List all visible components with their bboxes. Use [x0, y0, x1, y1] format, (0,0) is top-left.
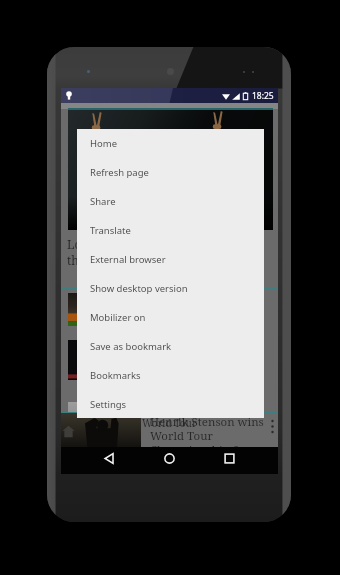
button[interactable]: Mobilizer on	[77, 303, 264, 332]
staticText: External browser	[90, 253, 166, 266]
button[interactable]: Back	[87, 445, 131, 472]
staticText: Save as bookmark	[90, 340, 172, 353]
button[interactable]: Settings	[77, 390, 264, 418]
button[interactable]: Home	[77, 129, 264, 158]
staticText: Translate	[90, 224, 131, 237]
button[interactable]: Translate	[77, 216, 264, 245]
staticText: Share	[90, 195, 116, 208]
staticText: Settings	[90, 398, 127, 411]
staticText: Show desktop version	[90, 282, 188, 295]
staticText: Henrik Stenson wins	[142, 340, 241, 354]
button[interactable]: Save as bookmark	[77, 332, 264, 361]
staticText: Mobilizer on	[90, 311, 146, 324]
button[interactable]: Home	[147, 445, 191, 472]
button[interactable]: Share	[77, 187, 264, 216]
staticText: Bookmarks	[90, 369, 141, 382]
staticText: Lorem ipsum dolor sit amet	[67, 236, 226, 252]
staticText: that matters most today	[67, 252, 203, 268]
staticText: Henrik Stenson wins World Tour Champions…	[150, 414, 272, 471]
button[interactable]: External browser	[77, 245, 264, 274]
staticText: 18:25	[252, 90, 274, 102]
button[interactable]: Show desktop version	[77, 274, 264, 303]
button[interactable]: Refresh page	[77, 158, 264, 187]
staticText: Home	[90, 137, 118, 150]
staticText: Refresh page	[90, 166, 149, 179]
staticText: World Tour	[142, 307, 197, 321]
button[interactable]: Recent apps	[207, 445, 251, 472]
button[interactable]: Bookmarks	[77, 361, 264, 390]
staticText: World Tour	[142, 416, 197, 430]
